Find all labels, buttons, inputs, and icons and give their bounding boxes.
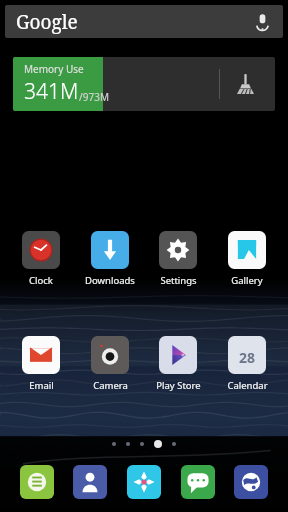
button[interactable]: Memory Use bbox=[13, 57, 275, 111]
button[interactable]: Notes bbox=[20, 465, 54, 499]
staticText: Clock bbox=[29, 274, 53, 287]
staticText: /973M bbox=[79, 90, 109, 104]
staticText: 28 bbox=[239, 348, 256, 367]
button[interactable]: Gallery bbox=[215, 230, 279, 288]
button[interactable]: Settings bbox=[146, 230, 210, 288]
button[interactable]: Clean memory bbox=[230, 69, 260, 99]
button[interactable]: Messages bbox=[181, 465, 215, 499]
staticText: Play Store bbox=[156, 379, 201, 392]
staticText: Settings bbox=[160, 274, 197, 287]
staticText: 341M bbox=[24, 77, 79, 106]
button[interactable]: Contacts bbox=[73, 465, 107, 499]
staticText: Email bbox=[29, 379, 54, 392]
staticText: Calendar bbox=[227, 379, 268, 392]
staticText: Camera bbox=[93, 379, 128, 392]
staticText: Downloads bbox=[85, 274, 135, 287]
button[interactable]: 28 bbox=[215, 335, 279, 393]
staticText: Memory Use bbox=[24, 62, 84, 76]
staticText: Gallery bbox=[231, 274, 263, 287]
button[interactable]: Apps bbox=[127, 465, 161, 499]
button[interactable]: Play Store bbox=[146, 335, 210, 393]
button[interactable]: Browser bbox=[234, 465, 268, 499]
staticText: Google bbox=[16, 9, 78, 35]
button[interactable]: Voice search bbox=[250, 10, 274, 34]
button[interactable]: Google bbox=[5, 5, 283, 38]
button[interactable]: Camera bbox=[78, 335, 142, 393]
button[interactable]: Clock bbox=[9, 230, 73, 288]
button[interactable]: Email bbox=[9, 335, 73, 393]
button[interactable]: Downloads bbox=[78, 230, 142, 288]
